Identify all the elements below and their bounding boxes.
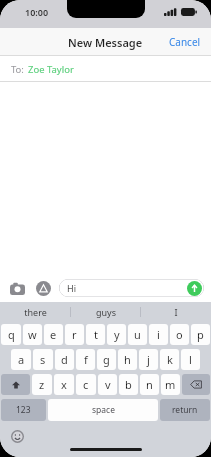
button[interactable]: 123	[1, 399, 46, 421]
button[interactable]: Send	[187, 281, 202, 296]
button[interactable]: a	[11, 349, 31, 370]
staticText: 10:00	[25, 6, 49, 18]
staticText: a	[18, 352, 25, 367]
staticText: w	[28, 327, 37, 342]
button[interactable]: To:	[0, 56, 211, 82]
staticText: c	[83, 377, 89, 392]
button[interactable]: guys	[71, 302, 141, 322]
button[interactable]: u	[128, 324, 147, 345]
button[interactable]: p	[191, 324, 210, 345]
staticText: j	[147, 352, 150, 367]
button[interactable]: Cancel	[159, 30, 211, 54]
staticText: there	[24, 306, 47, 318]
button[interactable]: Camera	[7, 278, 27, 298]
staticText: g	[103, 352, 110, 367]
staticText: t	[94, 327, 98, 342]
button[interactable]: s	[33, 349, 53, 370]
staticText: p	[197, 327, 204, 342]
button[interactable]: Emoji	[9, 428, 25, 444]
staticText: s	[40, 352, 46, 367]
button[interactable]: c	[76, 374, 96, 395]
button[interactable]: I	[141, 302, 211, 322]
button[interactable]: w	[23, 324, 42, 345]
staticText: y	[114, 327, 120, 342]
button[interactable]: q	[1, 324, 21, 345]
button[interactable]: v	[98, 374, 117, 395]
button[interactable]: y	[107, 324, 126, 345]
staticText: k	[167, 352, 173, 367]
staticText: u	[134, 327, 141, 342]
button[interactable]: Shift	[1, 374, 30, 395]
button[interactable]: space	[48, 399, 158, 421]
staticText: f	[84, 352, 88, 367]
staticText: Hi	[67, 282, 76, 294]
staticText: b	[125, 377, 132, 392]
button[interactable]: l	[181, 349, 200, 370]
button[interactable]: return	[160, 399, 210, 421]
staticText: o	[176, 327, 183, 342]
button[interactable]: z	[32, 374, 52, 395]
staticText: guys	[96, 306, 116, 318]
staticText: e	[50, 327, 57, 342]
button[interactable]: there	[0, 302, 71, 322]
button[interactable]: e	[44, 324, 63, 345]
staticText: n	[146, 377, 153, 392]
staticText: x	[61, 377, 67, 392]
button[interactable]: d	[55, 349, 74, 370]
staticText: m	[165, 377, 176, 392]
button[interactable]: k	[160, 349, 179, 370]
staticText: I	[174, 306, 178, 318]
staticText: To:	[11, 63, 24, 76]
button[interactable]: r	[65, 324, 84, 345]
staticText: l	[189, 352, 192, 367]
button[interactable]: Apps	[33, 278, 53, 298]
button[interactable]: n	[140, 374, 159, 395]
staticText: space	[92, 404, 115, 416]
staticText: v	[105, 377, 111, 392]
button[interactable]: g	[97, 349, 116, 370]
staticText: Cancel	[169, 35, 201, 49]
button[interactable]: Hi	[59, 279, 204, 297]
button[interactable]: t	[86, 324, 105, 345]
button[interactable]: j	[139, 349, 158, 370]
staticText: 123	[16, 404, 31, 416]
staticText: i	[157, 327, 160, 342]
staticText: h	[124, 352, 131, 367]
button[interactable]: x	[54, 374, 74, 395]
button[interactable]: Backspace	[182, 374, 210, 395]
button[interactable]: b	[119, 374, 138, 395]
button[interactable]: o	[170, 324, 189, 345]
staticText: r	[72, 327, 77, 342]
button[interactable]: i	[149, 324, 168, 345]
staticText: q	[8, 327, 15, 342]
button[interactable]: f	[76, 349, 95, 370]
staticText: d	[61, 352, 68, 367]
button[interactable]: m	[161, 374, 180, 395]
staticText: New Message	[68, 35, 143, 50]
staticText: return	[172, 404, 198, 416]
staticText: Zoe Taylor	[28, 63, 74, 76]
button[interactable]: h	[118, 349, 137, 370]
staticText: z	[39, 377, 45, 392]
